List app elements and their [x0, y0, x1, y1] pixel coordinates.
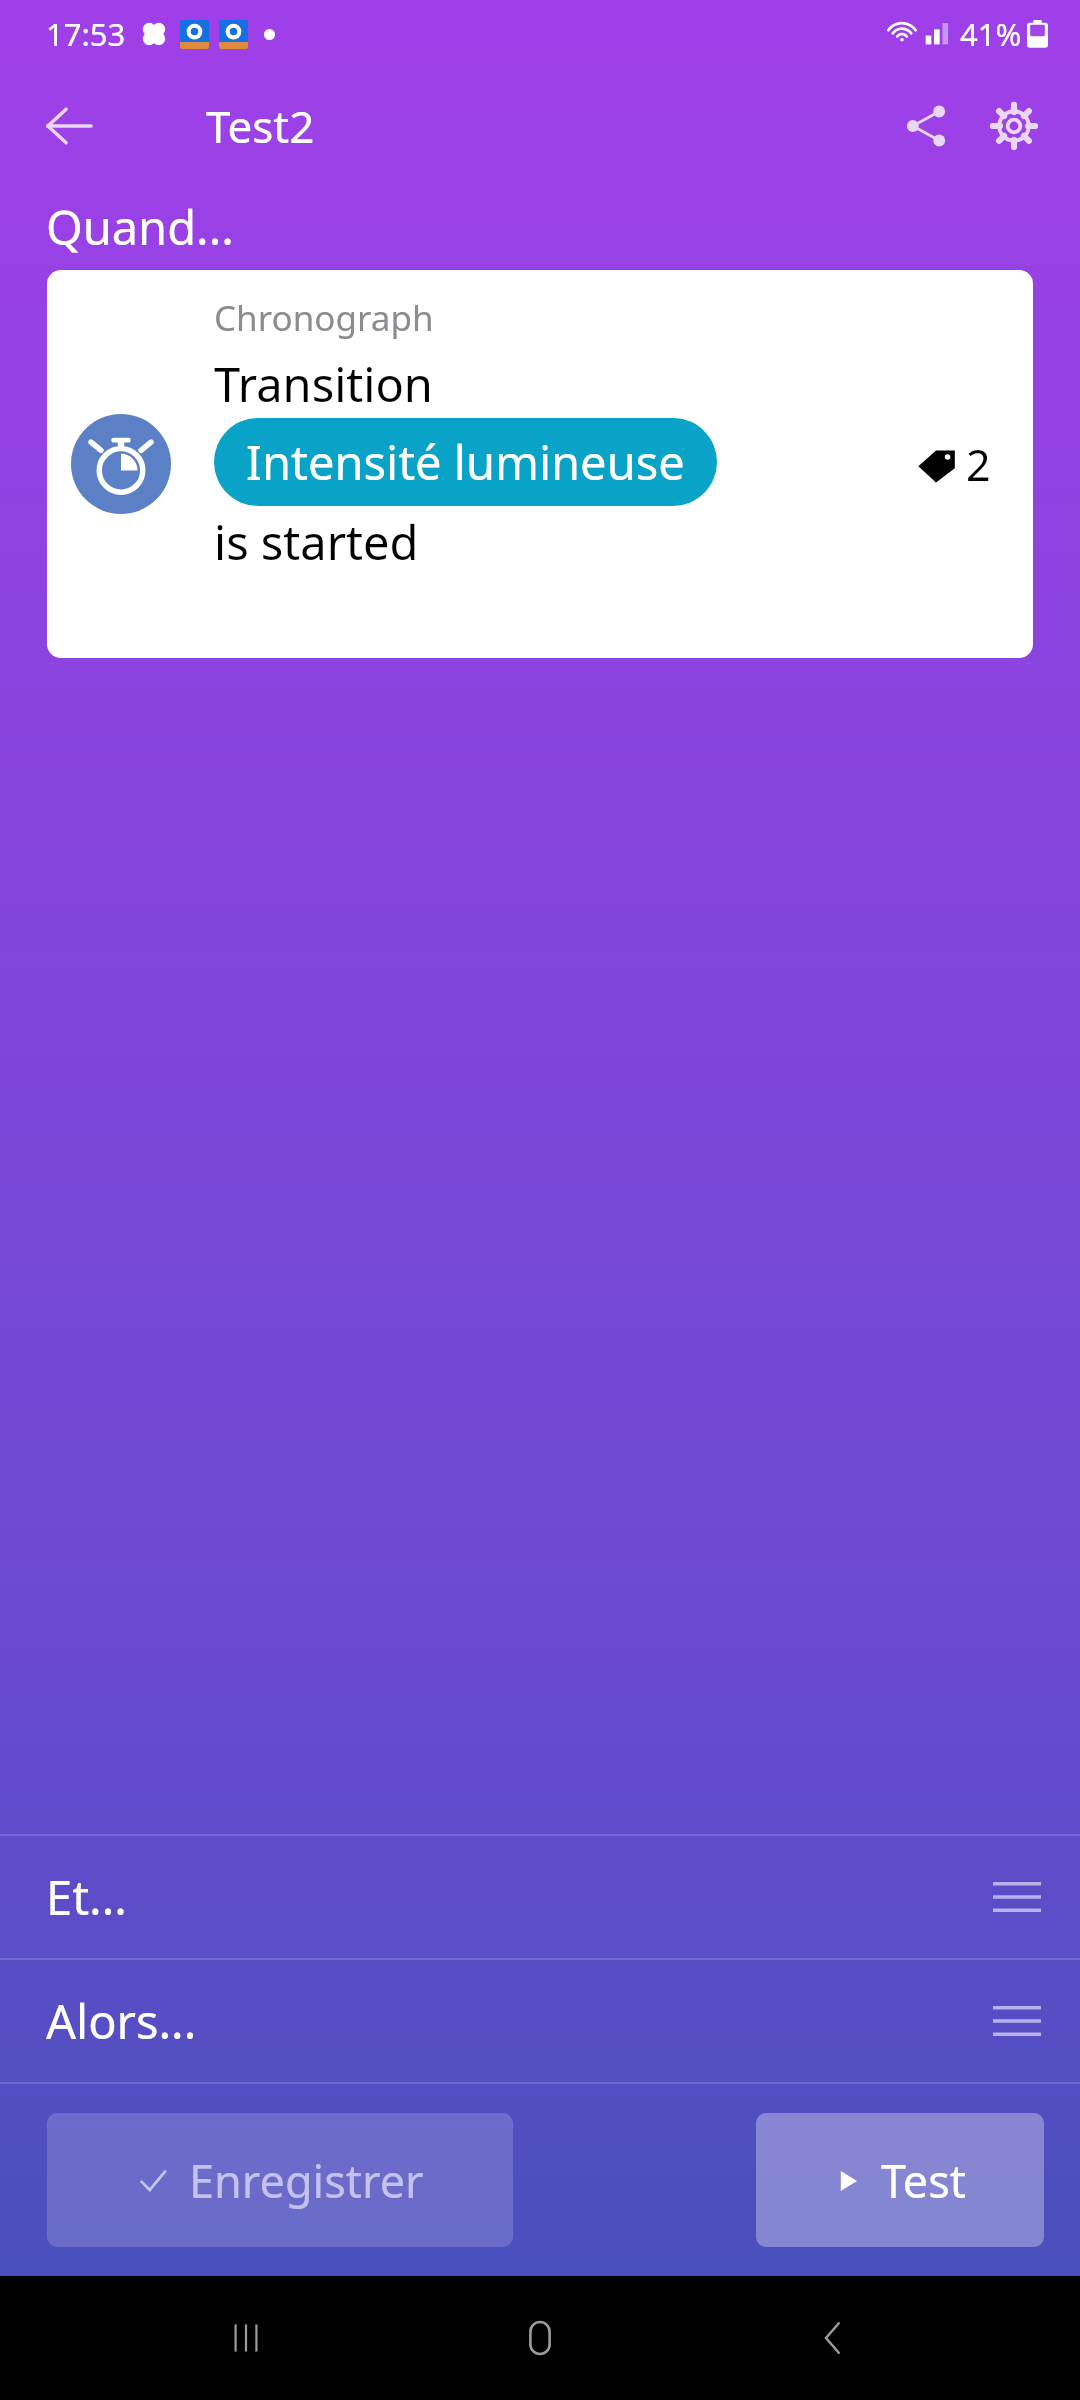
staticText: 17:53 [46, 13, 126, 55]
staticText: Alors... [46, 1989, 197, 2053]
staticText: Intensité lumineuse [246, 430, 685, 494]
button[interactable]: Test [756, 2113, 1044, 2247]
button[interactable]: Settings [970, 82, 1058, 170]
other: Reorder [982, 1862, 1052, 1932]
staticText: is started [214, 510, 419, 574]
button[interactable]: Recents [198, 2290, 294, 2386]
button[interactable]: Back [786, 2290, 882, 2386]
button[interactable]: Back [26, 83, 112, 169]
staticText: Transition [214, 352, 433, 416]
staticText: Test2 [206, 96, 315, 156]
staticText: 41% [960, 13, 1022, 55]
staticText: Test [881, 2150, 967, 2211]
staticText: Quand... [46, 195, 234, 259]
staticText: Enregistrer [189, 2150, 424, 2211]
staticText: 2 [966, 435, 991, 494]
other: Reorder [982, 1986, 1052, 2056]
button[interactable]: Enregistrer [47, 2113, 513, 2247]
button[interactable]: Chronograph [47, 270, 1033, 658]
staticText: Chronograph [214, 294, 434, 342]
button[interactable]: Alors... [0, 1960, 1080, 2082]
button[interactable]: Share [882, 82, 970, 170]
button[interactable]: Home [492, 2290, 588, 2386]
staticText: Et... [46, 1865, 127, 1929]
button[interactable]: Et... [0, 1836, 1080, 1958]
